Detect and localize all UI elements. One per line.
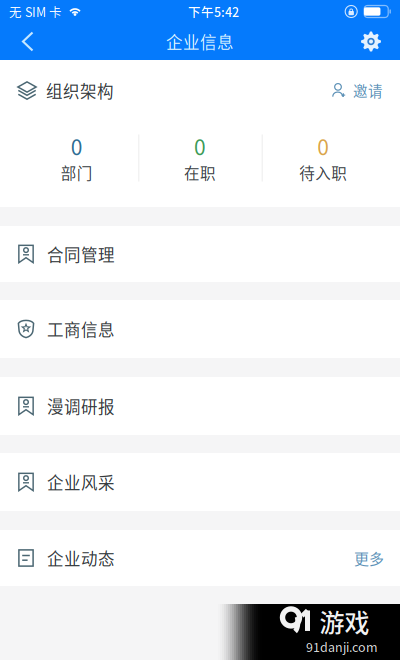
button[interactable]: 企业风采 (0, 453, 400, 511)
staticText: 下午5:42 (188, 2, 239, 21)
staticText: 工商信息 (47, 317, 115, 341)
button[interactable]: 合同管理 (0, 226, 400, 282)
staticText: 企业动态 (47, 546, 115, 570)
button[interactable]: 漫调研报 (0, 377, 400, 435)
staticText: 企业信息 (166, 30, 234, 53)
staticText: 合同管理 (47, 242, 115, 266)
button[interactable]: 企业动态 (0, 530, 400, 586)
staticText: 0 (317, 131, 329, 161)
staticText: 组织架构 (46, 79, 114, 102)
staticText: 游戏 (319, 603, 369, 640)
staticText: 在职 (184, 161, 216, 184)
button[interactable]: 设置 (349, 23, 393, 60)
staticText: 0 (71, 131, 83, 161)
staticText: 部门 (61, 161, 93, 184)
staticText: 91danji.com (306, 637, 378, 656)
staticText: 0 (194, 131, 206, 161)
button[interactable]: 邀请 (332, 76, 383, 104)
staticText: 待入职 (299, 161, 347, 184)
button[interactable]: 返回 (7, 23, 49, 60)
staticText: 更多 (354, 547, 384, 569)
staticText: 邀请 (353, 80, 383, 101)
staticText: 漫调研报 (47, 394, 115, 418)
staticText: 企业风采 (47, 470, 115, 494)
button[interactable]: 工商信息 (0, 300, 400, 358)
staticText: 无 SIM 卡 (9, 2, 62, 21)
